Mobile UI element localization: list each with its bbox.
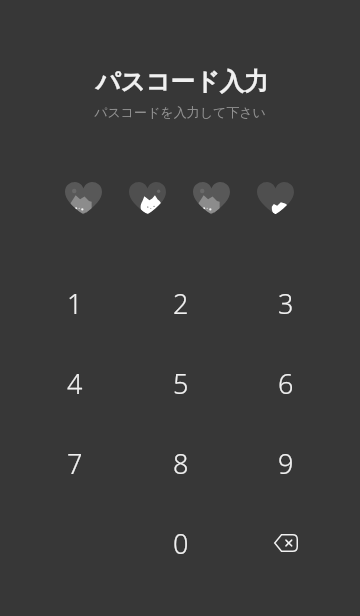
button[interactable]: 1: [22, 263, 128, 343]
other: Digit empty: [193, 182, 230, 215]
staticText: 6: [278, 365, 294, 402]
button[interactable]: 7: [22, 423, 128, 503]
button[interactable]: 3: [233, 263, 338, 343]
staticText: 3: [278, 285, 294, 322]
staticText: 0: [173, 525, 189, 562]
other: Digit entered: [257, 182, 294, 215]
button[interactable]: 5: [128, 343, 233, 423]
button[interactable]: 4: [22, 343, 128, 423]
staticText: 7: [67, 445, 83, 482]
staticText: パスコード入力: [95, 67, 269, 98]
button[interactable]: 0: [128, 503, 233, 583]
button[interactable]: 9: [233, 423, 338, 503]
staticText: 8: [173, 445, 189, 482]
button[interactable]: 8: [128, 423, 233, 503]
staticText: パスコードを入力して下さい: [94, 104, 266, 120]
other: Digit entered: [129, 182, 166, 215]
staticText: 4: [67, 365, 83, 402]
staticText: 2: [173, 285, 189, 322]
other: Digit empty: [65, 182, 102, 215]
staticText: 9: [278, 445, 294, 482]
button[interactable]: 2: [128, 263, 233, 343]
button[interactable]: 6: [233, 343, 338, 423]
staticText: 1: [67, 285, 83, 322]
staticText: 5: [173, 365, 189, 402]
button[interactable]: Delete: [233, 503, 338, 583]
